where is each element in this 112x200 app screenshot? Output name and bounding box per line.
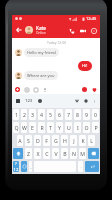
- staticText: ?123: [13, 161, 19, 172]
- staticText: Online: [36, 31, 46, 35]
- staticText: E: [31, 124, 34, 131]
- staticText: Y: [58, 124, 61, 131]
- button[interactable]: W: [21, 122, 27, 133]
- button[interactable]: 7: [65, 109, 72, 120]
- staticText: 1: [15, 111, 18, 118]
- button[interactable]: Hi!: [78, 61, 92, 71]
- staticText: Where are you: [27, 73, 55, 78]
- button[interactable]: Where are you: [24, 71, 58, 80]
- staticText: 9: [85, 111, 88, 118]
- button[interactable]: Z: [25, 148, 32, 159]
- staticText: N: [72, 150, 76, 157]
- staticText: K: [81, 137, 85, 144]
- staticText: V: [54, 150, 58, 157]
- staticText: T: [49, 124, 52, 131]
- button[interactable]: J: [70, 135, 77, 146]
- button[interactable]: I: [74, 122, 81, 133]
- button[interactable]: T: [47, 122, 54, 133]
- staticText: ,: [30, 164, 32, 170]
- button[interactable]: P: [92, 122, 99, 133]
- button[interactable]: A: [17, 135, 23, 146]
- staticText: F: [45, 137, 48, 144]
- button[interactable]: Send: [82, 87, 87, 92]
- staticText: 8: [76, 111, 79, 118]
- button[interactable]: Like: [92, 87, 97, 92]
- button[interactable]: X: [34, 148, 41, 159]
- staticText: S: [27, 137, 30, 144]
- button[interactable]: 4: [38, 109, 45, 120]
- staticText: J: [73, 137, 75, 144]
- button[interactable]: O: [83, 122, 90, 133]
- button[interactable]: N: [70, 148, 77, 159]
- staticText: Today 12:30: [47, 40, 66, 45]
- button[interactable]: 6: [56, 109, 63, 120]
- button[interactable]: 5: [47, 109, 54, 120]
- staticText: L: [90, 137, 93, 144]
- button[interactable]: Emoji: [38, 99, 42, 103]
- button[interactable]: Y: [56, 122, 63, 133]
- staticText: X: [36, 150, 40, 157]
- button[interactable]: 8: [74, 109, 81, 120]
- button[interactable]: S: [25, 135, 32, 146]
- staticText: D: [36, 137, 40, 144]
- button[interactable]: Voice message: [42, 87, 47, 92]
- staticText: Z: [27, 150, 30, 157]
- button[interactable]: H: [61, 135, 68, 146]
- button[interactable]: More options: [88, 25, 99, 36]
- button[interactable]: Settings: [84, 99, 88, 103]
- staticText: H: [63, 137, 67, 144]
- button[interactable]: Video call: [77, 25, 88, 36]
- button[interactable]: D: [34, 135, 41, 146]
- staticText: 7: [67, 111, 70, 118]
- button[interactable]: 2: [21, 109, 27, 120]
- button[interactable]: Add: [15, 87, 20, 92]
- button[interactable]: 3: [29, 109, 36, 120]
- button[interactable]: R: [38, 122, 45, 133]
- button[interactable]: Enter: [85, 161, 99, 172]
- button[interactable]: G: [52, 135, 59, 146]
- staticText: R: [40, 124, 44, 131]
- button[interactable]: Hello my friend: [24, 48, 59, 57]
- button[interactable]: 1: [13, 109, 19, 120]
- staticText: B: [63, 150, 67, 157]
- staticText: Hi!: [82, 63, 88, 69]
- button[interactable]: Backspace: [88, 148, 99, 159]
- button[interactable]: Translate: [75, 99, 79, 103]
- button[interactable]: 123: [25, 98, 33, 104]
- button[interactable]: Gallery: [33, 87, 38, 92]
- button[interactable]: L: [88, 135, 95, 146]
- staticText: I: [77, 124, 79, 131]
- button[interactable]: Shift: [13, 148, 23, 159]
- button[interactable]: M: [79, 148, 86, 159]
- button[interactable]: .: [78, 161, 83, 172]
- staticText: Hello my friend: [27, 50, 56, 55]
- staticText: .: [80, 164, 82, 170]
- button[interactable]: U: [65, 122, 72, 133]
- staticText: C: [45, 150, 49, 157]
- button[interactable]: E: [29, 122, 36, 133]
- button[interactable]: Back: [14, 25, 24, 35]
- button[interactable]: ,: [29, 161, 32, 172]
- staticText: U: [67, 124, 71, 131]
- button[interactable]: Clipboard: [16, 99, 20, 103]
- button[interactable]: Q: [13, 122, 19, 133]
- staticText: M: [80, 150, 85, 157]
- button[interactable]: Camera: [24, 87, 29, 92]
- button[interactable]: K: [79, 135, 86, 146]
- button[interactable]: B: [61, 148, 68, 159]
- button[interactable]: 0: [92, 109, 99, 120]
- button[interactable]: 9: [83, 109, 90, 120]
- staticText: Kate: [36, 25, 46, 31]
- button[interactable]: V: [52, 148, 59, 159]
- staticText: 3: [31, 111, 34, 118]
- button[interactable]: Call: [66, 25, 77, 36]
- staticText: 0: [94, 111, 97, 118]
- staticText: 12:45: [86, 16, 97, 21]
- button[interactable]: F: [43, 135, 50, 146]
- button[interactable]: C: [43, 148, 50, 159]
- button[interactable]: More: [93, 100, 96, 103]
- staticText: P: [94, 124, 98, 131]
- button[interactable]: Emoji key: [21, 161, 27, 172]
- button[interactable]: ?123: [13, 161, 19, 172]
